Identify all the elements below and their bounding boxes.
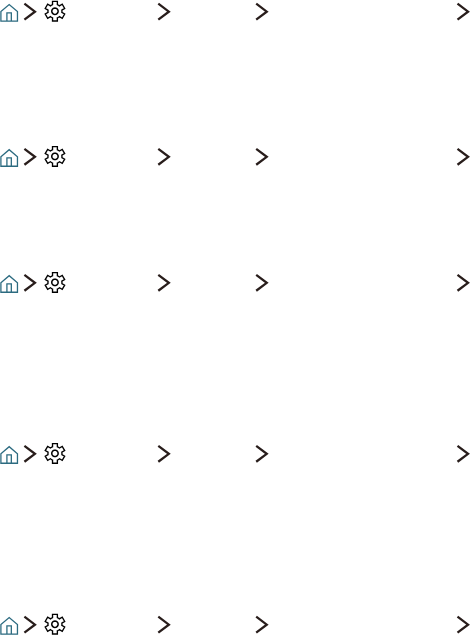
- button[interactable]: Settings search result: [0, 381, 473, 552]
- button[interactable]: Home: [0, 446, 18, 464]
- button[interactable]: Home: [0, 4, 18, 22]
- button[interactable]: Settings: [44, 1, 65, 22]
- button[interactable]: Settings search result: [0, 84, 473, 210]
- button[interactable]: Settings: [44, 614, 65, 635]
- button[interactable]: Home: [0, 275, 18, 293]
- button[interactable]: Settings: [44, 272, 65, 293]
- button[interactable]: Settings search result: [0, 0, 473, 84]
- button[interactable]: Settings: [44, 443, 65, 464]
- button[interactable]: Settings search result: [0, 552, 473, 635]
- button[interactable]: Settings search result: [0, 210, 473, 381]
- button[interactable]: Home: [0, 149, 18, 167]
- button[interactable]: Settings: [44, 146, 65, 167]
- button[interactable]: Home: [0, 617, 18, 635]
